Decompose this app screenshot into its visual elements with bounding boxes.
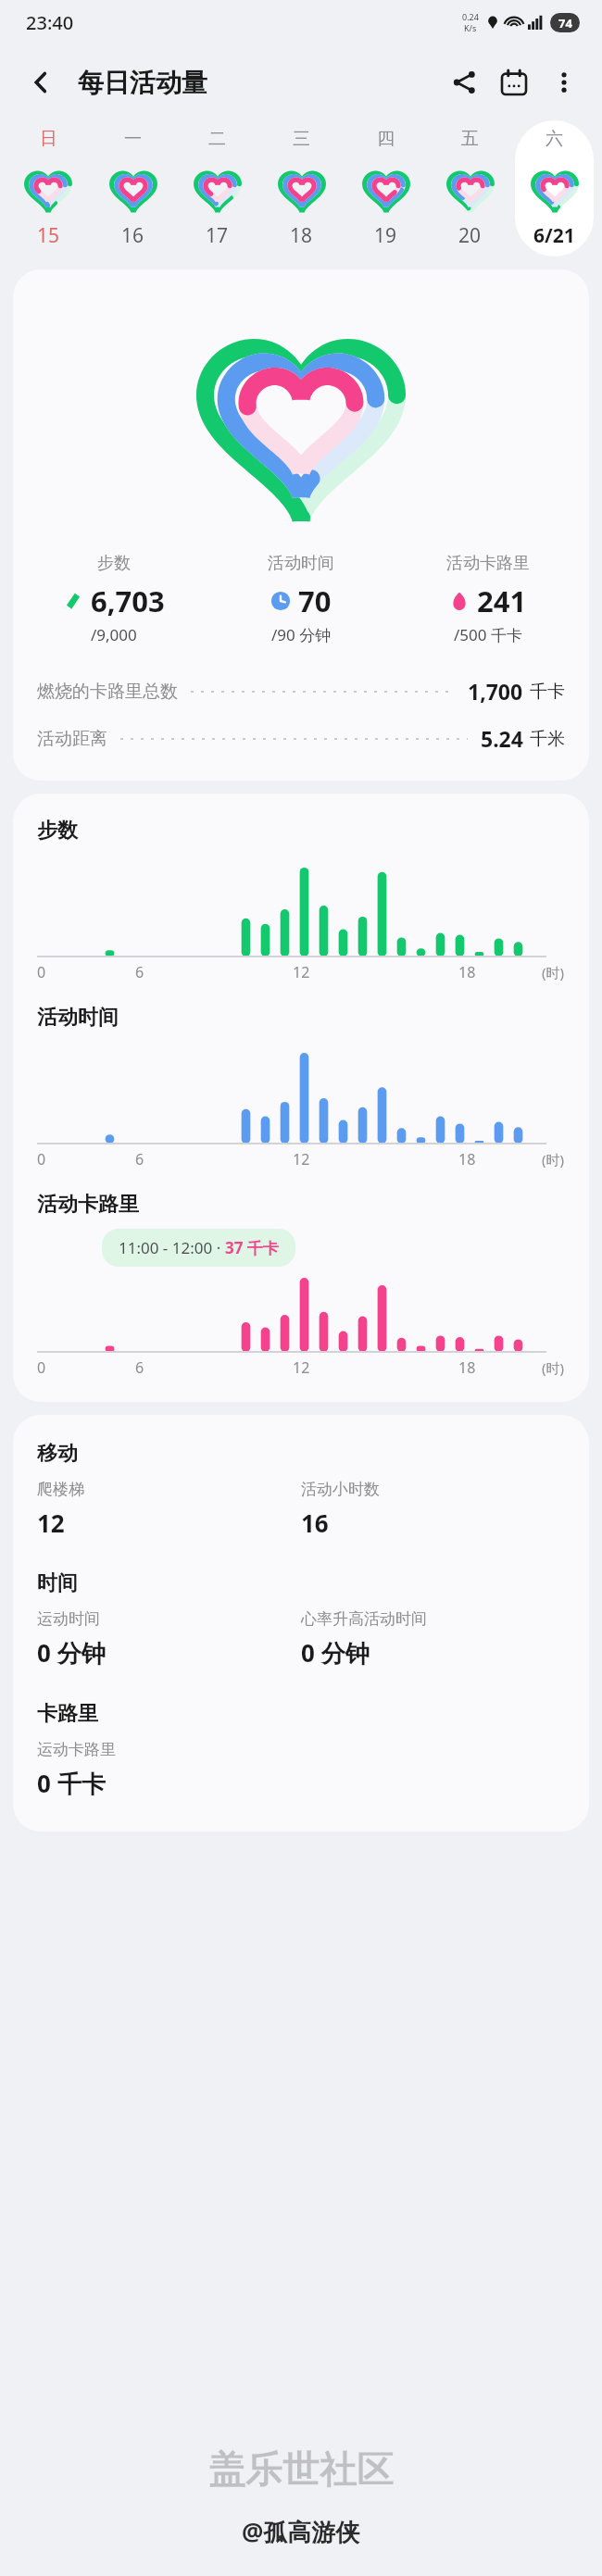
staticText: 活动小时数 <box>301 1480 380 1499</box>
staticText: 活动卡路里 <box>37 1192 139 1218</box>
staticText: /90 分钟 <box>271 624 332 645</box>
staticText: 千卡 <box>530 681 565 703</box>
staticText: 活动时间 <box>268 553 334 574</box>
staticText: 1,700 <box>468 677 523 706</box>
staticText: 日 <box>40 128 57 150</box>
staticText: 卡路里 <box>37 1701 98 1727</box>
staticText: 16 <box>301 1507 329 1539</box>
staticText: 四 <box>377 128 395 150</box>
button[interactable]: Back <box>17 58 65 106</box>
staticText: 0 分钟 <box>37 1636 106 1669</box>
staticText: 18 <box>290 222 313 249</box>
staticText: (时) <box>542 1358 565 1377</box>
button[interactable]: 运动时间 <box>37 1609 301 1669</box>
button[interactable]: 活动时间 <box>13 1005 589 1169</box>
staticText: 0 千卡 <box>37 1767 106 1800</box>
button[interactable]: 活动时间 <box>207 553 395 645</box>
staticText: 活动时间 <box>37 1005 119 1031</box>
staticText: 时间 <box>37 1570 78 1596</box>
staticText: 步数 <box>97 553 131 574</box>
button[interactable]: 活动距离 <box>13 724 589 753</box>
staticText: 12 <box>293 1357 310 1378</box>
staticText: 6,703 <box>91 581 165 620</box>
staticText: (时) <box>542 1150 565 1169</box>
button[interactable]: 活动卡路里 <box>13 1192 589 1378</box>
staticText: 活动卡路里 <box>446 553 530 574</box>
staticText: 一 <box>124 128 142 150</box>
staticText: 12 <box>293 962 310 982</box>
staticText: 17 <box>206 222 229 249</box>
staticText: 12 <box>293 1149 310 1169</box>
staticText: 19 <box>374 222 397 249</box>
staticText: 五 <box>461 128 479 150</box>
staticText: 0 分钟 <box>301 1636 370 1669</box>
staticText: 20 <box>458 222 482 249</box>
staticText: 运动卡路里 <box>37 1740 116 1759</box>
staticText: 15 <box>37 222 60 249</box>
staticText: 三 <box>293 128 310 150</box>
button[interactable]: More options <box>539 57 589 107</box>
staticText: 70 <box>298 581 332 620</box>
staticText: 运动时间 <box>37 1609 100 1629</box>
staticText: 6 <box>135 962 144 982</box>
staticText: @孤高游侠 <box>242 2515 360 2548</box>
staticText: 千米 <box>530 728 565 750</box>
button[interactable]: 二 <box>178 120 257 256</box>
staticText: /9,000 <box>91 624 137 645</box>
staticText: 6 <box>135 1357 144 1378</box>
staticText: 12 <box>37 1507 65 1539</box>
staticText: 18 <box>458 962 476 982</box>
staticText: 燃烧的卡路里总数 <box>37 681 178 703</box>
button[interactable]: 三 <box>262 120 341 256</box>
button[interactable]: 燃烧的卡路里总数 <box>13 677 589 706</box>
staticText: 241 <box>477 581 527 620</box>
button[interactable]: 四 <box>346 120 425 256</box>
staticText: 0 <box>37 1357 46 1378</box>
button[interactable]: 活动小时数 <box>301 1480 565 1539</box>
button[interactable]: 运动卡路里 <box>37 1740 301 1800</box>
staticText: 六 <box>546 128 563 150</box>
staticText: 步数 <box>37 818 78 844</box>
staticText: 心率升高活动时间 <box>301 1609 427 1629</box>
staticText: 6/21 <box>533 222 575 249</box>
staticText: 6 <box>135 1149 144 1169</box>
staticText: 5.24 <box>481 724 523 753</box>
button[interactable]: 五 <box>431 120 509 256</box>
staticText: 移动 <box>37 1441 78 1467</box>
button[interactable]: 心率升高活动时间 <box>301 1609 565 1669</box>
staticText: 74 <box>558 15 572 31</box>
staticText: 37 千卡 <box>225 1237 279 1258</box>
button[interactable]: 一 <box>94 120 172 256</box>
staticText: 16 <box>121 222 144 249</box>
staticText: 11:00 - 12:00 · <box>119 1237 225 1258</box>
staticText: 0 <box>37 1149 46 1169</box>
button[interactable]: 步数 <box>20 553 207 645</box>
button[interactable]: Share <box>439 57 489 107</box>
button[interactable]: 活动卡路里 <box>395 553 582 645</box>
button[interactable]: 日 <box>8 120 88 256</box>
staticText: 每日活动量 <box>78 67 207 99</box>
button[interactable]: 六 <box>515 120 594 256</box>
staticText: 爬楼梯 <box>37 1480 84 1499</box>
button[interactable]: Calendar <box>489 57 539 107</box>
button[interactable]: 爬楼梯 <box>37 1480 301 1539</box>
staticText: 二 <box>208 128 226 150</box>
staticText: 0 <box>37 962 46 982</box>
staticText: 23:40 <box>26 10 74 35</box>
staticText: 18 <box>458 1149 476 1169</box>
staticText: 0.24 <box>462 11 479 22</box>
staticText: 盖乐世社区 <box>208 2446 394 2493</box>
staticText: 活动距离 <box>37 728 107 750</box>
staticText: (时) <box>542 963 565 982</box>
staticText: 18 <box>458 1357 476 1378</box>
staticText: K/s <box>464 22 477 33</box>
button[interactable]: 步数 <box>13 818 589 982</box>
staticText: /500 千卡 <box>454 624 522 645</box>
